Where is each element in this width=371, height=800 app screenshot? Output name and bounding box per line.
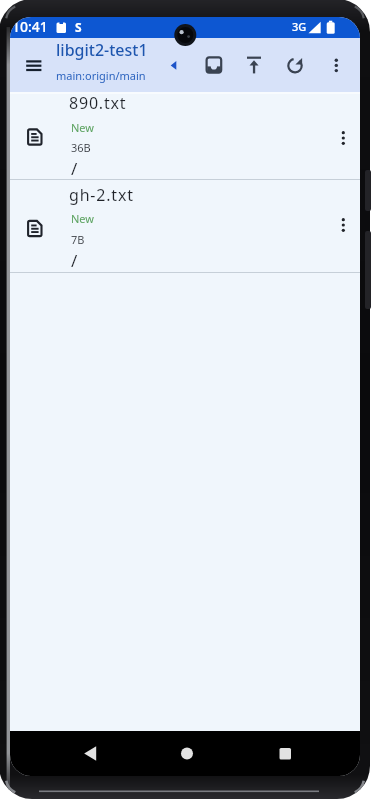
staticText: New xyxy=(71,120,94,135)
staticText: / xyxy=(71,157,78,180)
staticText: / xyxy=(71,249,78,272)
button[interactable] xyxy=(163,55,179,75)
button[interactable]: 890.txt xyxy=(10,93,360,179)
staticText: 890.txt xyxy=(69,92,127,114)
staticText: main:origin/main xyxy=(56,68,146,83)
button[interactable] xyxy=(172,739,202,769)
staticText: gh-2.txt xyxy=(69,184,134,206)
button[interactable] xyxy=(281,51,309,79)
staticText: libgit2-test1 xyxy=(56,39,148,61)
button[interactable] xyxy=(270,739,300,769)
staticText: 10:41 xyxy=(12,17,48,36)
button[interactable] xyxy=(240,51,268,79)
button[interactable]: gh-2.txt xyxy=(10,179,360,272)
staticText: 7B xyxy=(71,232,85,247)
staticText: New xyxy=(71,211,94,226)
button[interactable] xyxy=(76,739,106,769)
button[interactable] xyxy=(322,51,350,79)
staticText: 3G xyxy=(292,19,307,34)
button[interactable] xyxy=(200,51,228,79)
staticText: S xyxy=(75,19,82,35)
button[interactable] xyxy=(20,51,48,79)
staticText: 36B xyxy=(71,140,91,155)
